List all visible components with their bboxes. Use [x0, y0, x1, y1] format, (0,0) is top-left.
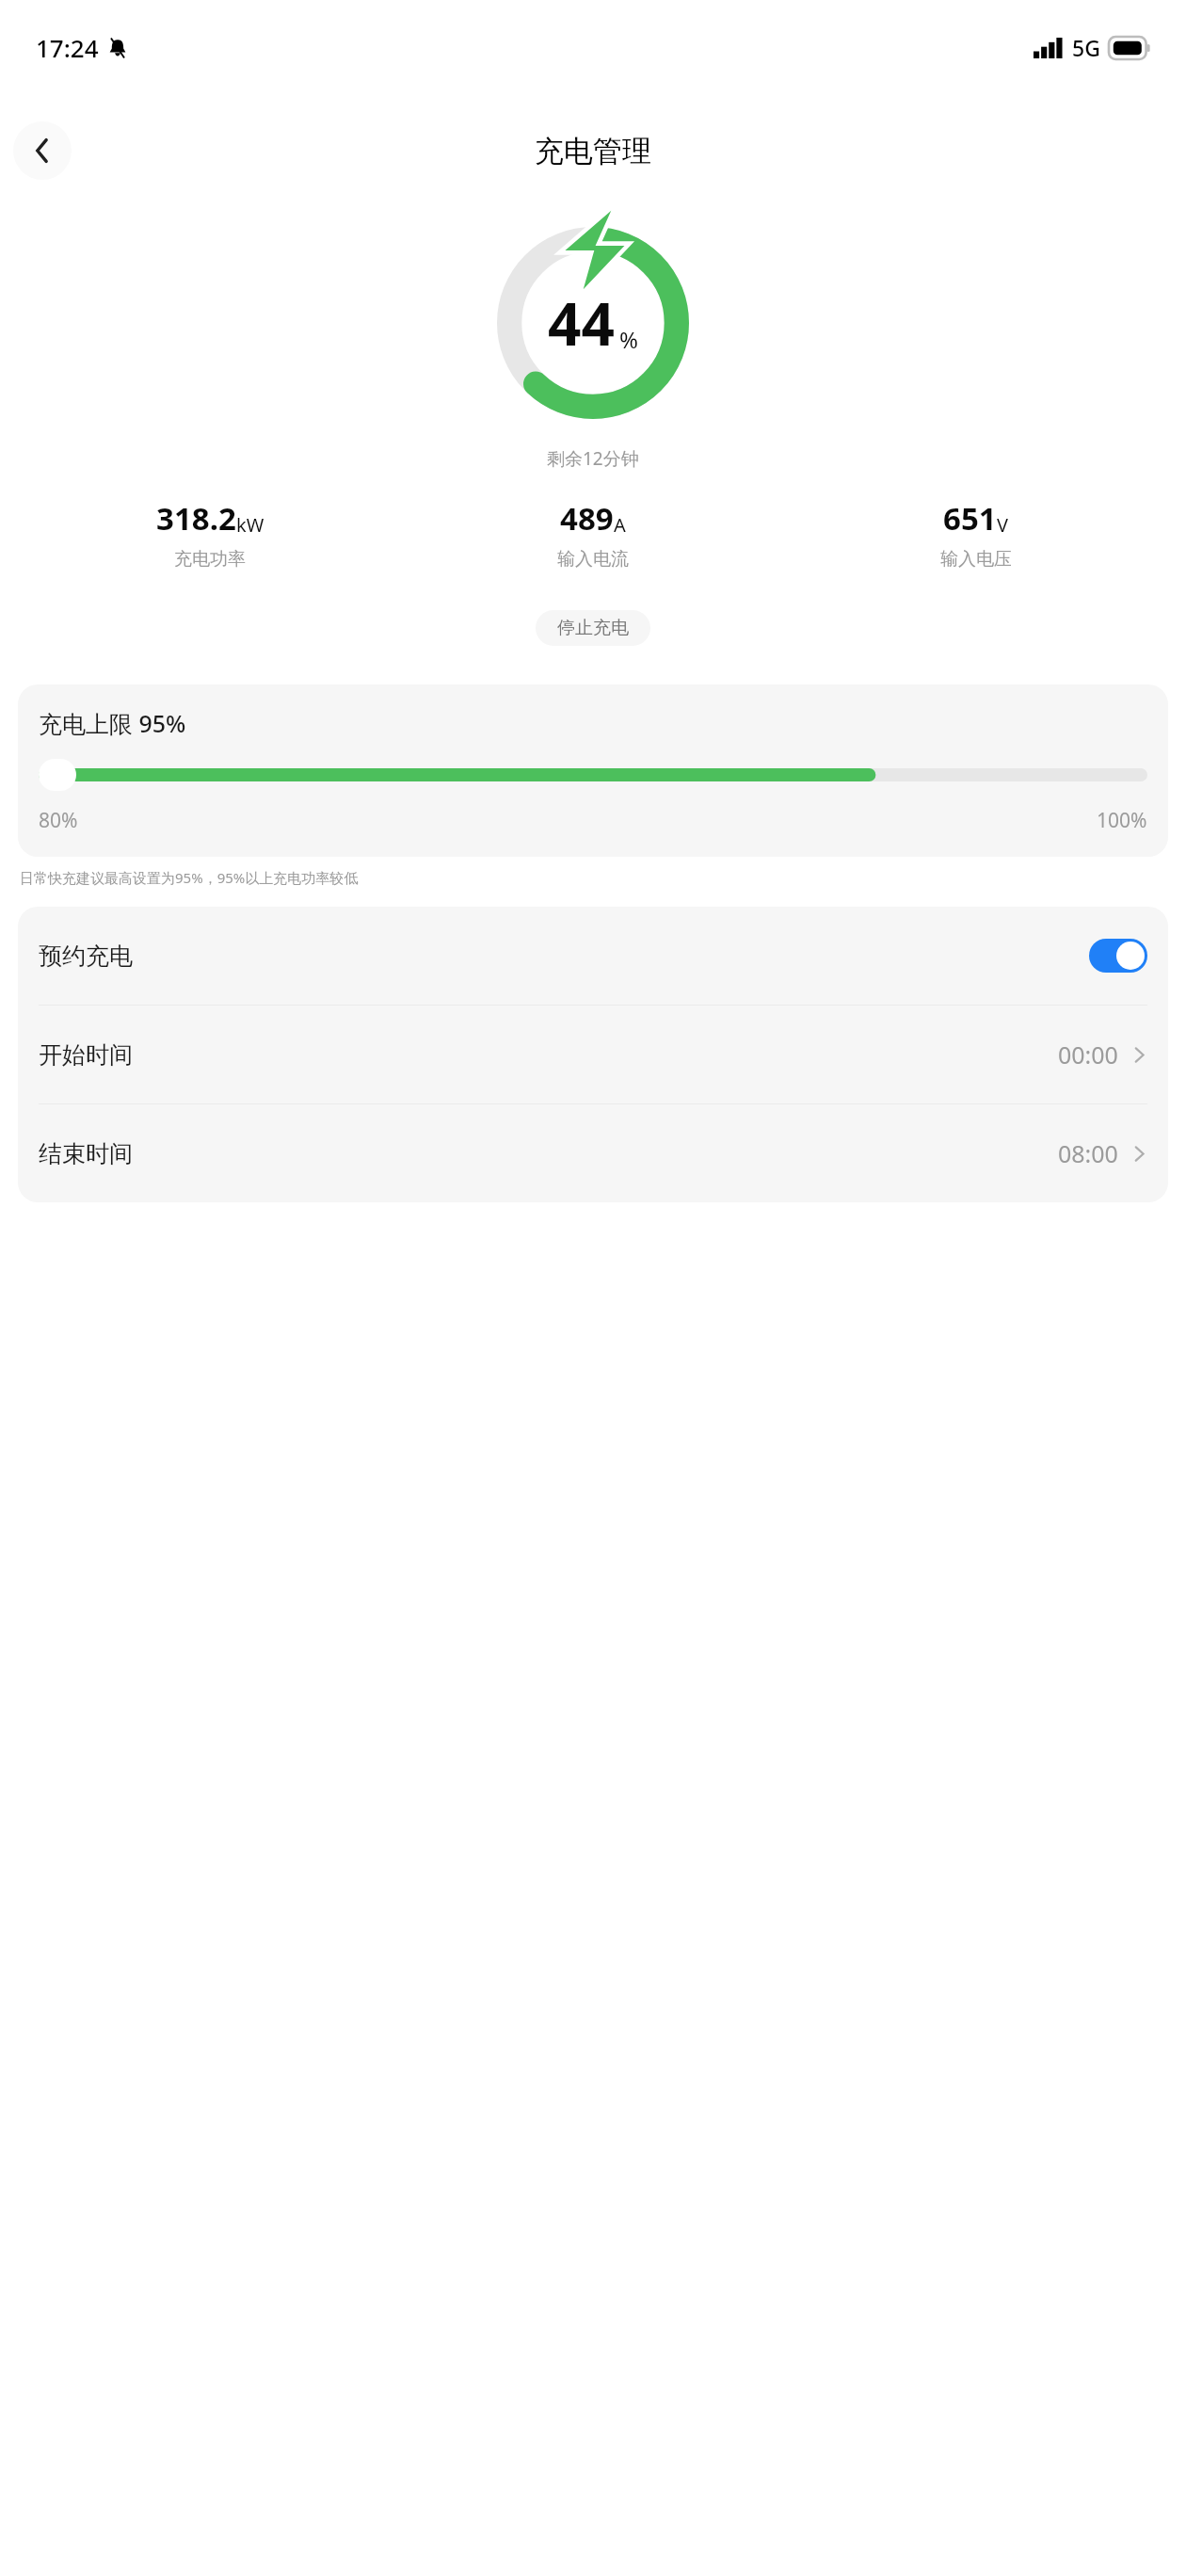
staticText: 开始时间: [39, 1040, 1058, 1070]
staticText: 17:24: [36, 31, 99, 64]
button[interactable]: 预约充电: [18, 907, 1168, 1005]
staticText: 输入电压: [940, 548, 1012, 571]
staticText: 结束时间: [39, 1139, 1058, 1168]
button[interactable]: 停止充电: [536, 610, 650, 646]
staticText: 输入电流: [557, 548, 629, 571]
button[interactable]: [39, 759, 76, 791]
button[interactable]: Back: [13, 121, 72, 180]
staticText: V: [997, 512, 1008, 538]
staticText: 剩余12分钟: [547, 446, 639, 471]
staticText: 100%: [1097, 807, 1147, 834]
button[interactable]: Scheduled charging toggle: [1089, 939, 1147, 973]
staticText: 日常快充建议最高设置为95%，95%以上充电功率较低: [20, 868, 359, 887]
staticText: 08:00: [1058, 1137, 1118, 1169]
staticText: 00:00: [1058, 1038, 1118, 1071]
staticText: 651: [943, 497, 997, 539]
button[interactable]: 结束时间: [18, 1104, 1168, 1202]
staticText: 5G: [1072, 33, 1100, 62]
staticText: 充电管理: [535, 133, 651, 169]
staticText: %: [619, 324, 638, 355]
staticText: A: [614, 512, 626, 538]
staticText: 80%: [39, 807, 78, 834]
staticText: 318.2: [156, 497, 236, 539]
staticText: kW: [236, 512, 264, 538]
staticText: 停止充电: [557, 617, 629, 639]
button[interactable]: 开始时间: [18, 1006, 1168, 1103]
staticText: 489: [560, 497, 614, 539]
staticText: 预约充电: [39, 942, 1089, 971]
staticText: 44: [548, 283, 615, 362]
staticText: 充电功率: [174, 548, 246, 571]
staticText: 充电上限 95%: [39, 707, 186, 739]
